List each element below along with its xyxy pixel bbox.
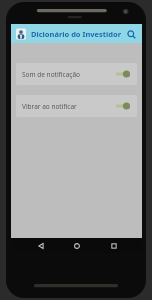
button[interactable]: Vibrar ao notificar xyxy=(16,95,137,117)
staticText: Som de notificação xyxy=(22,70,111,79)
button[interactable]: Home xyxy=(69,238,84,253)
staticText: Dicionário do Investidor xyxy=(31,29,124,39)
button[interactable]: Recent apps xyxy=(106,238,121,253)
button[interactable]: Toggle xyxy=(115,100,131,112)
button[interactable]: Som de notificação xyxy=(16,63,137,85)
staticText: Vibrar ao notificar xyxy=(22,102,111,111)
button[interactable]: Toggle xyxy=(115,68,131,80)
button[interactable]: Back xyxy=(33,238,48,253)
button[interactable]: Search xyxy=(124,27,138,41)
